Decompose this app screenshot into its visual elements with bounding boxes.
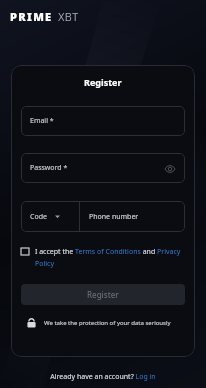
staticText: Phone number: [89, 212, 139, 222]
button[interactable]: Show password: [163, 162, 176, 175]
staticText: PRIME XBT: [10, 9, 79, 24]
button[interactable]: Phone number: [80, 201, 185, 232]
staticText: Code: [30, 212, 47, 222]
staticText: Email *: [30, 116, 54, 126]
button[interactable]: Password *: [21, 153, 185, 183]
button[interactable]: Email *: [21, 106, 185, 136]
staticText: Register: [87, 289, 119, 300]
staticText: I accept the Terms of Conditions and Pri…: [35, 247, 185, 268]
staticText: We take the protection of your data seri…: [44, 319, 171, 327]
button[interactable]: PRIME XBT: [10, 9, 79, 24]
staticText: Register: [84, 76, 122, 88]
button[interactable]: I accept the Terms of Conditions and Pri…: [21, 247, 185, 268]
staticText: Password *: [30, 163, 68, 173]
button[interactable]: Already have an account? Log in: [50, 372, 156, 382]
button[interactable]: Register: [21, 284, 185, 305]
button[interactable]: Code: [21, 201, 79, 232]
